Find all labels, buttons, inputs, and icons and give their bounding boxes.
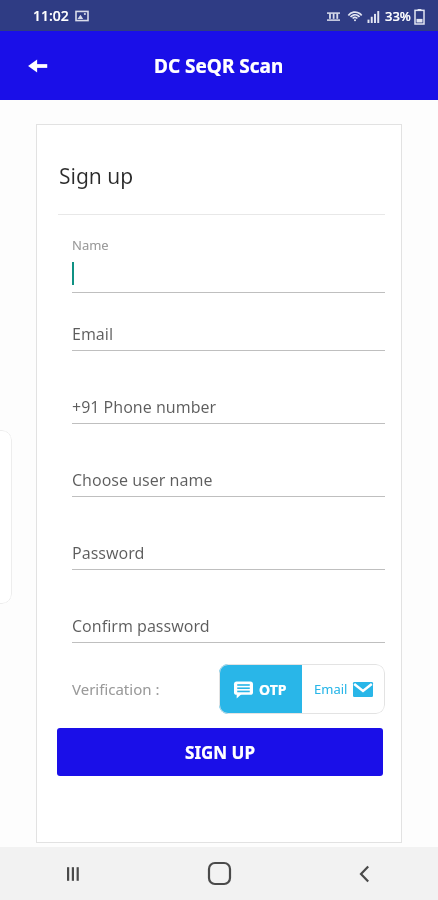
staticText: SIGN UP [185,741,255,764]
button[interactable]: Name [72,236,385,293]
button[interactable]: Recents [0,847,146,900]
button[interactable]: SIGN UP [57,728,383,776]
staticText: Verification : [72,679,160,699]
staticText: +91 Phone number [72,396,217,418]
button[interactable]: Confirm password [72,615,385,643]
staticText: Sign up [59,162,134,191]
button[interactable]: OTP [219,664,302,714]
staticText: Password [72,542,145,564]
button[interactable]: +91 Phone number [72,396,385,424]
staticText: 11:02 [33,6,69,25]
staticText: Email [314,680,348,698]
button[interactable]: Email [302,664,385,714]
staticText: Confirm password [72,615,210,637]
staticText: Email [72,323,114,345]
button[interactable]: Back [292,847,438,900]
staticText: 33% [385,7,411,25]
staticText: Choose user name [72,469,213,491]
button[interactable]: Home [146,847,292,900]
staticText: Name [72,236,109,254]
button[interactable]: Password [72,542,385,570]
staticText: DC SeQR Scan [154,53,284,79]
button[interactable]: Choose user name [72,469,385,497]
button[interactable]: Email [72,323,385,351]
staticText: OTP [259,680,287,699]
button[interactable]: Back [16,44,60,88]
